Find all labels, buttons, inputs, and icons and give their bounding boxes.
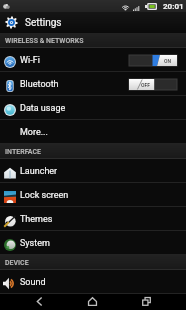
- staticText: ON: [164, 58, 171, 64]
- staticText: DEVICE: [5, 259, 29, 267]
- button[interactable]: Sound: [0, 270, 186, 294]
- button[interactable]: Themes: [0, 207, 186, 231]
- staticText: WIRELESS & NETWORKS: [5, 37, 84, 45]
- staticText: Wi-Fi: [20, 55, 40, 66]
- staticText: Launcher: [20, 166, 58, 177]
- staticText: System: [20, 238, 50, 249]
- staticText: Themes: [20, 214, 53, 225]
- staticText: Lock screen: [20, 190, 69, 201]
- button[interactable]: Lock screen: [0, 183, 186, 207]
- button[interactable]: OFF: [129, 79, 177, 90]
- staticText: INTERFACE: [5, 148, 42, 156]
- staticText: Sound: [20, 277, 46, 288]
- button[interactable]: Home: [75, 294, 109, 310]
- button[interactable]: Wi-Fi: [0, 48, 186, 72]
- staticText: OFF: [141, 82, 150, 88]
- button[interactable]: Bluetooth: [0, 72, 186, 96]
- staticText: Settings: [25, 17, 62, 29]
- staticText: Bluetooth: [20, 79, 59, 90]
- button[interactable]: ON: [129, 55, 177, 66]
- button[interactable]: More...: [0, 120, 186, 144]
- button[interactable]: Recent apps: [129, 294, 163, 310]
- button[interactable]: Launcher: [0, 159, 186, 183]
- button[interactable]: System: [0, 231, 186, 255]
- button[interactable]: Settings: [0, 12, 186, 33]
- staticText: 20:01: [163, 2, 184, 11]
- staticText: Data usage: [20, 103, 66, 114]
- button[interactable]: Data usage: [0, 96, 186, 120]
- staticText: More...: [20, 127, 48, 138]
- button[interactable]: Back: [22, 294, 56, 310]
